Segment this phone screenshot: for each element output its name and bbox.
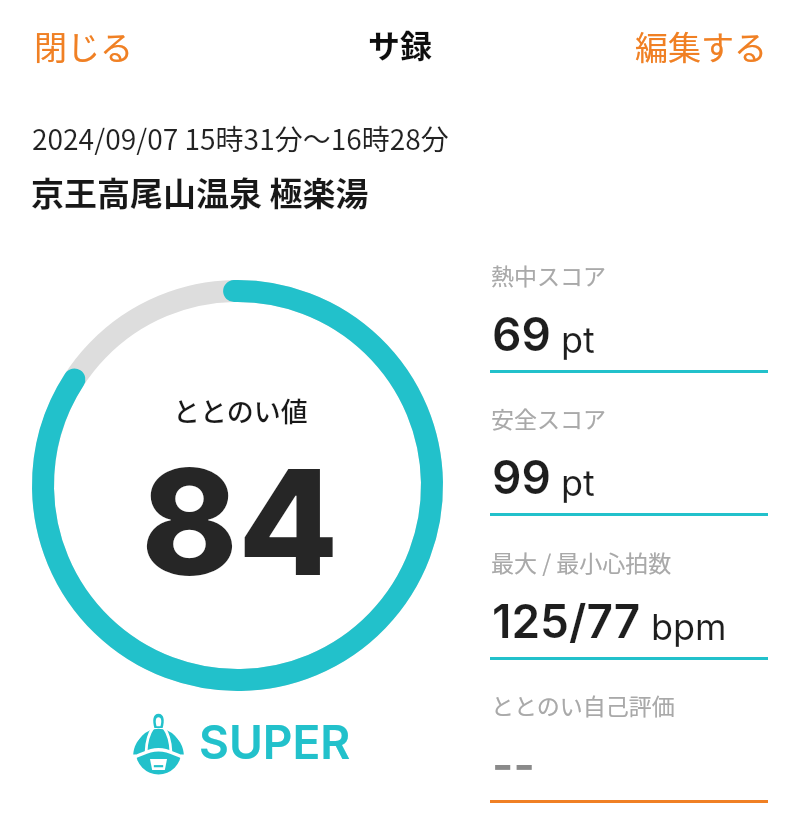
staticText: ととのい自己評価	[491, 688, 675, 721]
staticText: 編集する	[635, 22, 767, 70]
staticText: pt	[561, 318, 595, 362]
button[interactable]: ととのい自己評価	[490, 688, 768, 744]
staticText: --	[492, 736, 535, 792]
staticText: 2024/09/07 15時31分〜16時28分	[32, 118, 449, 159]
staticText: サ録	[368, 21, 433, 67]
button[interactable]: 最大 / 最小心拍数	[490, 545, 768, 601]
staticText: 熱中スコア	[491, 258, 606, 291]
staticText: 99	[492, 449, 551, 505]
staticText: 最大 / 最小心拍数	[491, 545, 672, 578]
other: SUPER rank	[131, 711, 186, 773]
staticText: 69	[492, 306, 551, 362]
button[interactable]: 編集する	[609, 6, 793, 86]
button[interactable]: 熱中スコア	[490, 258, 768, 314]
staticText: pt	[561, 461, 595, 505]
staticText: bpm	[651, 605, 727, 649]
staticText: 京王高尾山温泉 極楽湯	[31, 168, 369, 216]
staticText: 閉じる	[34, 22, 133, 70]
button[interactable]: 安全スコア	[490, 401, 768, 457]
staticText: 125/77	[492, 593, 641, 649]
staticText: 84	[141, 434, 339, 611]
staticText: SUPER	[199, 714, 351, 770]
staticText: ととのい値	[173, 391, 308, 430]
button[interactable]: 閉じる	[8, 6, 159, 86]
staticText: 安全スコア	[491, 401, 606, 434]
